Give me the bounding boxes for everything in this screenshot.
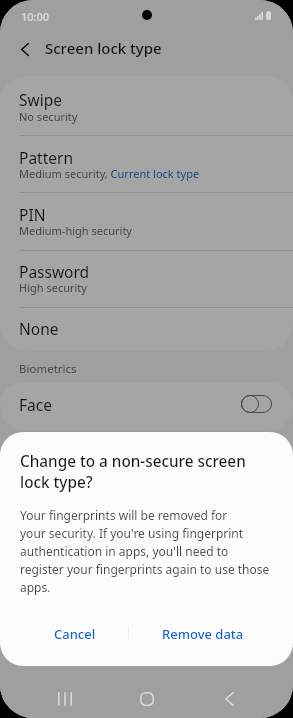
button[interactable]: Remove data bbox=[150, 617, 256, 651]
staticText: Face bbox=[19, 394, 52, 415]
button[interactable]: Pattern bbox=[0, 136, 293, 192]
button[interactable]: Swipe bbox=[0, 76, 293, 135]
button[interactable]: Back bbox=[225, 692, 249, 716]
button[interactable]: PIN bbox=[0, 193, 293, 250]
button[interactable]: Back bbox=[5, 29, 45, 69]
staticText: High security bbox=[19, 280, 87, 295]
button[interactable]: Home bbox=[140, 692, 164, 716]
staticText: Your fingerprints will be removed for yo… bbox=[20, 507, 270, 596]
button[interactable]: None bbox=[0, 308, 293, 350]
staticText: Password bbox=[19, 261, 90, 282]
staticText: 10:00 bbox=[21, 9, 50, 24]
staticText: Cancel bbox=[54, 625, 96, 643]
button[interactable]: Recents bbox=[58, 692, 82, 716]
staticText: PIN bbox=[19, 204, 46, 225]
button[interactable]: Password bbox=[0, 251, 293, 307]
staticText: No security bbox=[19, 109, 78, 124]
staticText: Swipe bbox=[19, 89, 62, 110]
staticText: Pattern bbox=[19, 147, 73, 168]
staticText: None bbox=[19, 318, 59, 339]
staticText: Change to a non-secure screen lock type? bbox=[20, 451, 246, 492]
staticText: Screen lock type bbox=[45, 38, 162, 58]
staticText: Medium-high security bbox=[19, 223, 132, 238]
staticText: Medium security, Current lock type bbox=[19, 166, 200, 181]
button[interactable]: Face bbox=[0, 382, 293, 426]
button[interactable]: Cancel bbox=[0, 617, 150, 651]
staticText: Biometrics bbox=[19, 361, 77, 377]
staticText: Remove data bbox=[162, 625, 244, 643]
